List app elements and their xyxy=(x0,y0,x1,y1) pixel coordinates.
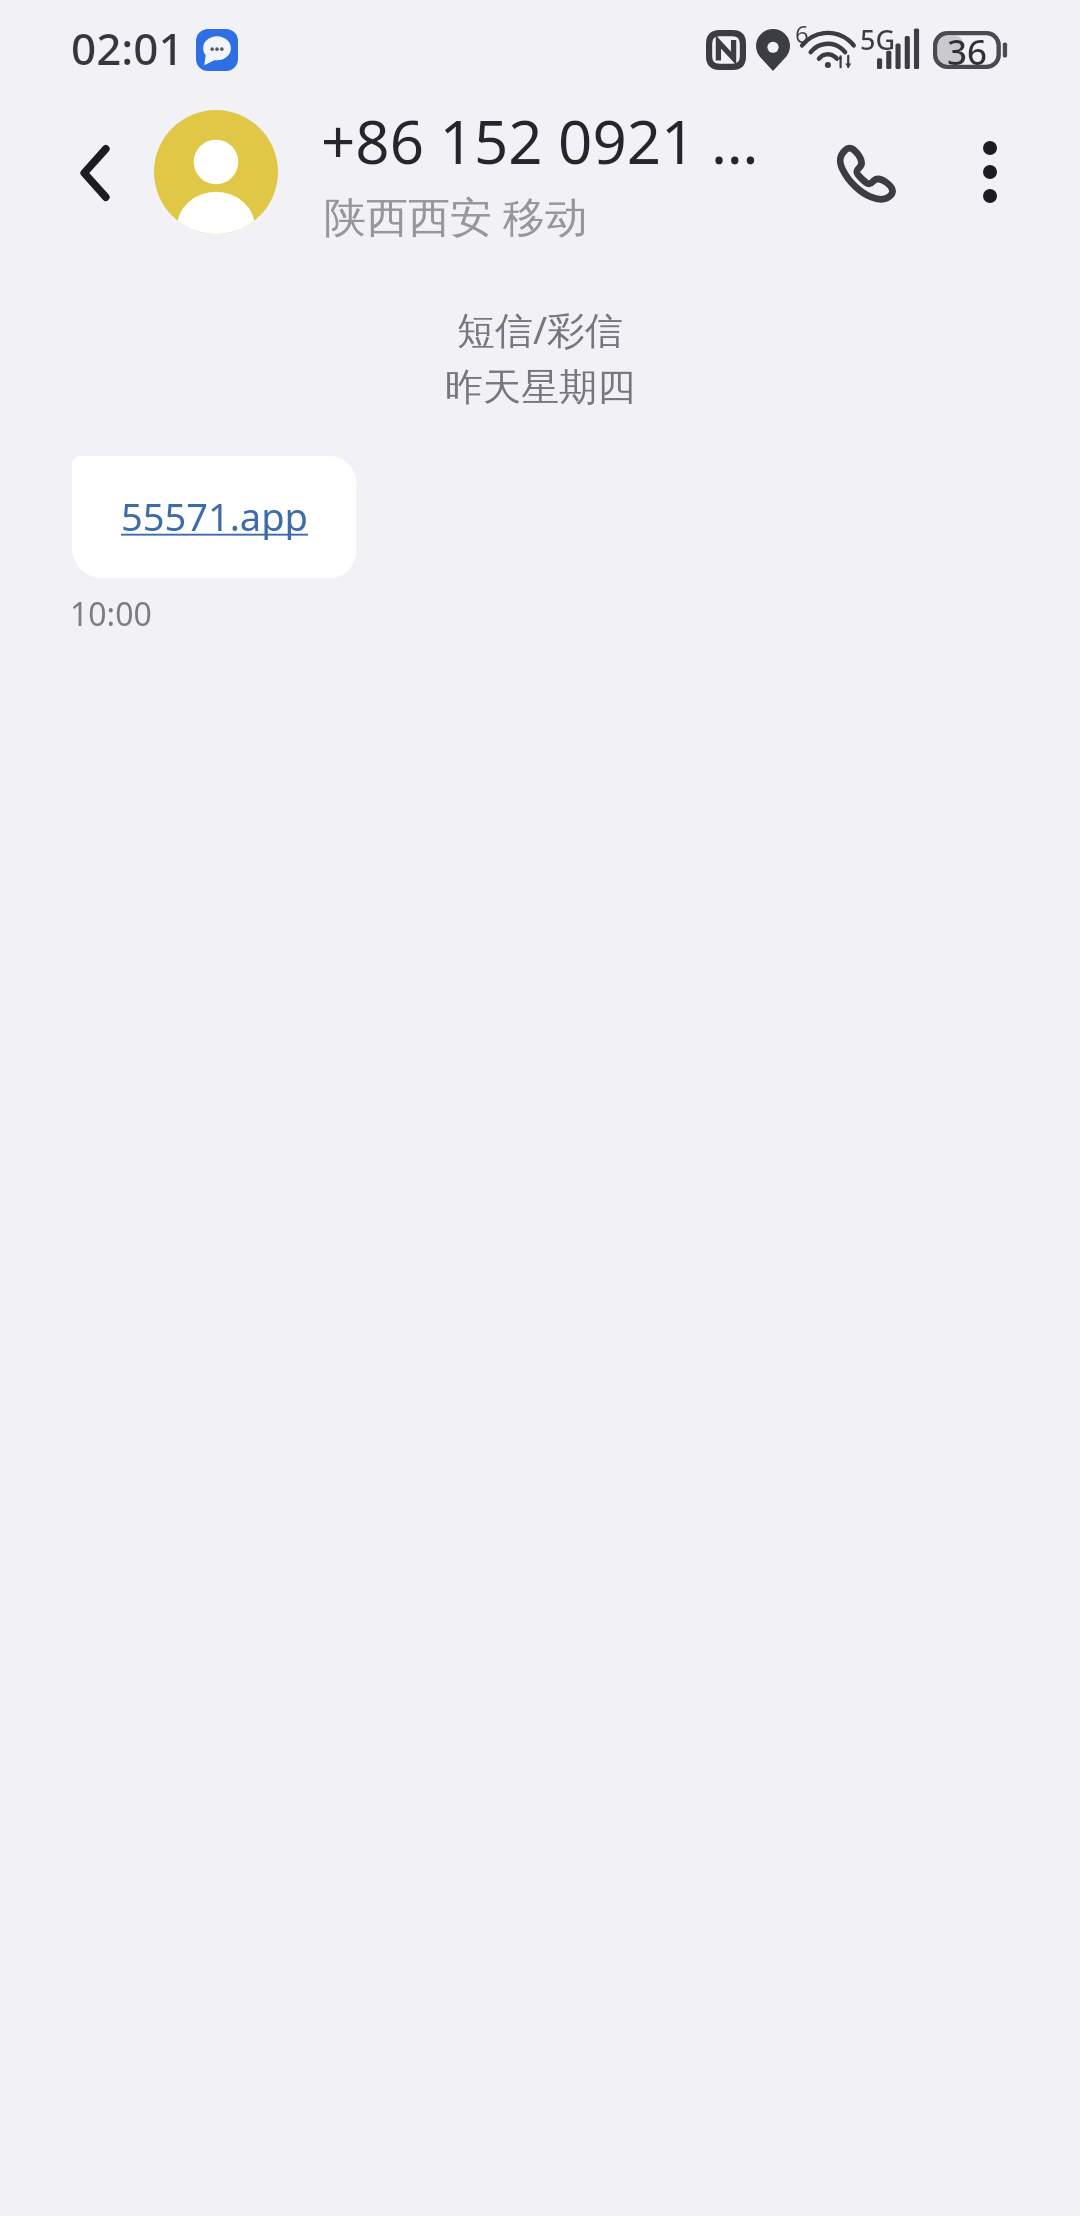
staticText: 5G xyxy=(860,21,896,58)
button[interactable]: +86 152 0921 … xyxy=(318,104,768,240)
button[interactable]: Contact avatar xyxy=(154,110,278,234)
staticText: 02:01 xyxy=(71,18,184,78)
staticText: 陕西西安 移动 xyxy=(324,187,587,244)
staticText: 昨天星期四 xyxy=(0,363,1080,411)
button[interactable]: More options xyxy=(947,129,1033,215)
staticText: 6 xyxy=(795,17,809,50)
staticText: 短信/彩信 xyxy=(0,303,1080,355)
staticText: 36 xyxy=(947,28,988,76)
button[interactable]: 55571.app xyxy=(72,456,356,578)
staticText: 55571.app xyxy=(121,490,308,542)
staticText: 10:00 xyxy=(70,592,152,636)
button[interactable]: Back xyxy=(50,128,140,218)
staticText: +86 152 0921 … xyxy=(321,100,759,182)
button[interactable]: Call xyxy=(817,123,913,219)
